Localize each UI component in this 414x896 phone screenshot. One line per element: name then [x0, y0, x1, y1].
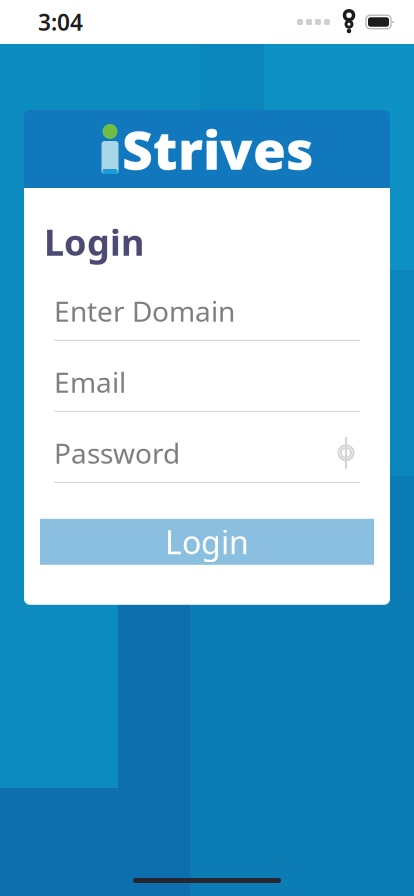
button[interactable]: Password [24, 436, 390, 483]
staticText: Login [165, 521, 249, 563]
staticText: Strives [122, 114, 314, 184]
staticText: Email [54, 363, 126, 400]
button[interactable]: Login [40, 519, 374, 565]
staticText: Login [44, 218, 144, 266]
button[interactable]: Enter Domain [24, 294, 390, 341]
staticText: Password [54, 434, 180, 471]
staticText: 3:04 [38, 7, 83, 37]
staticText: Enter Domain [54, 292, 235, 329]
button[interactable]: Email [24, 365, 390, 412]
